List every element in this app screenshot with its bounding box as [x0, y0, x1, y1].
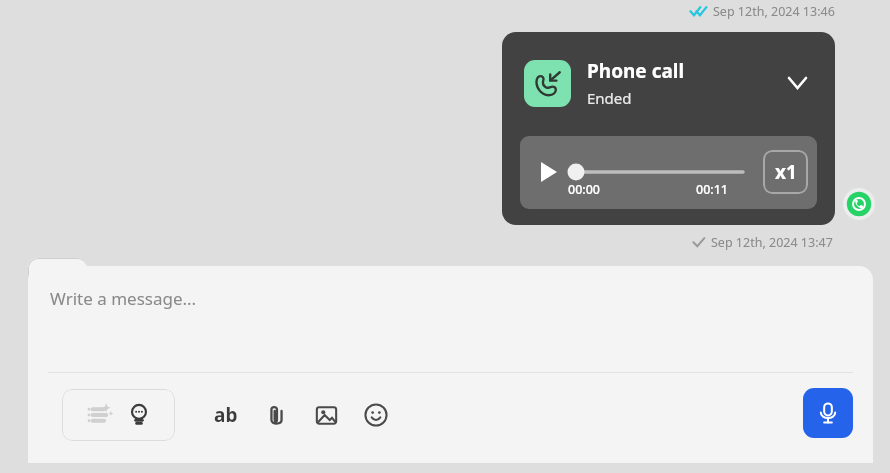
other: Sent: [692, 235, 706, 249]
staticText: 00:11: [696, 181, 729, 198]
button[interactable]: Tab: [28, 258, 88, 284]
staticText: Write a message...: [50, 287, 197, 310]
button[interactable]: Attach file: [255, 394, 297, 436]
button[interactable]: Add image: [305, 394, 347, 436]
button[interactable]: AI assist: [62, 389, 175, 441]
staticText: Ended: [587, 88, 632, 108]
button[interactable]: Format text: [205, 394, 247, 436]
button[interactable]: Record voice message: [803, 388, 853, 438]
button[interactable]: WhatsApp: [843, 188, 875, 220]
staticText: ab: [214, 402, 238, 428]
button[interactable]: Play: [534, 157, 564, 187]
button[interactable]: Phone call: [502, 32, 835, 225]
button[interactable]: Expand: [780, 66, 814, 100]
staticText: x1: [775, 159, 797, 185]
staticText: Phone call: [587, 58, 685, 84]
button[interactable]: Emoji: [355, 394, 397, 436]
button[interactable]: x1: [763, 150, 808, 194]
staticText: Sep 12th, 2024 13:47: [711, 234, 833, 251]
staticText: Sep 12th, 2024 13:46: [713, 3, 835, 20]
other: Read: [690, 4, 710, 18]
staticText: 00:00: [568, 181, 601, 198]
